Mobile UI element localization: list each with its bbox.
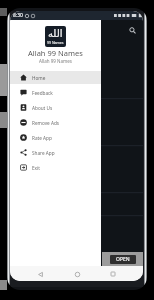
button[interactable]: Remove Ads bbox=[10, 115, 101, 130]
staticText: Allah 99 Names bbox=[28, 48, 83, 58]
staticText: Rate App bbox=[32, 135, 52, 141]
staticText: Share App bbox=[32, 150, 55, 156]
button[interactable]: Exit bbox=[10, 160, 101, 175]
staticText: الله bbox=[48, 28, 63, 40]
staticText: 8:30 bbox=[13, 12, 23, 19]
staticText: Home bbox=[32, 75, 46, 81]
button[interactable]: Home bbox=[70, 267, 84, 281]
button[interactable]: About Us bbox=[10, 100, 101, 115]
button[interactable]: Share App bbox=[10, 145, 101, 160]
staticText: Exit bbox=[32, 165, 40, 171]
button[interactable]: Search bbox=[126, 24, 138, 36]
button[interactable]: Home bbox=[10, 70, 101, 85]
button[interactable]: OPEN bbox=[110, 255, 136, 264]
staticText: 99 Names bbox=[47, 40, 64, 45]
button[interactable]: Recents bbox=[106, 267, 120, 281]
staticText: Allah 99 Names bbox=[39, 58, 72, 64]
button[interactable]: Rate App bbox=[10, 130, 101, 145]
button[interactable]: Feedback bbox=[10, 85, 101, 100]
staticText: Feedback bbox=[32, 90, 53, 96]
staticText: About Us bbox=[32, 105, 53, 111]
staticText: Remove Ads bbox=[32, 120, 60, 126]
staticText: OPEN bbox=[116, 256, 130, 263]
button[interactable]: Back bbox=[33, 267, 47, 281]
